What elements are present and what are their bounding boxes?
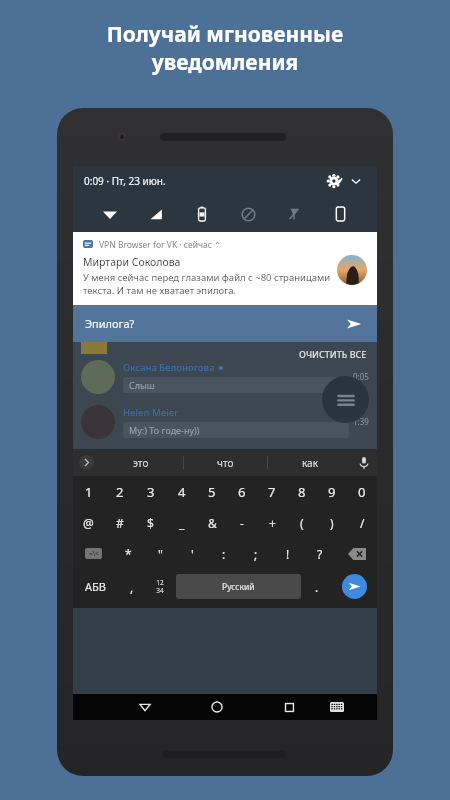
staticText: Му:) То годе-ну)) bbox=[129, 424, 200, 436]
button[interactable]: , bbox=[118, 569, 146, 604]
staticText: Эпилога? bbox=[85, 316, 135, 331]
staticText: 5 bbox=[208, 483, 216, 501]
staticText: VPN Browser for VK · сейчас ⌃ bbox=[99, 239, 222, 251]
staticText: ) bbox=[330, 515, 334, 531]
staticText: , bbox=[130, 579, 134, 595]
button[interactable]: " bbox=[144, 538, 176, 569]
staticText: 4 bbox=[178, 483, 186, 501]
button[interactable]: / bbox=[347, 507, 377, 538]
staticText: ' bbox=[191, 546, 194, 562]
staticText: 9 bbox=[328, 483, 336, 501]
button[interactable]: ) bbox=[317, 507, 347, 538]
button[interactable]: # bbox=[104, 507, 135, 538]
staticText: Слыш bbox=[129, 379, 155, 391]
staticText: 1 bbox=[85, 483, 93, 501]
button[interactable]: Quick setting bbox=[95, 199, 125, 229]
staticText: ; bbox=[254, 546, 258, 562]
button[interactable]: как bbox=[268, 449, 351, 476]
staticText: : bbox=[222, 546, 226, 562]
button[interactable]: _ bbox=[166, 507, 197, 538]
staticText: =\< bbox=[89, 549, 99, 558]
staticText: " bbox=[158, 546, 163, 562]
button[interactable]: Quick setting bbox=[187, 199, 217, 229]
staticText: 8 bbox=[298, 483, 306, 501]
button[interactable]: Helen Meier bbox=[73, 399, 377, 444]
button[interactable]: Quick setting bbox=[141, 199, 171, 229]
button[interactable]: . bbox=[303, 569, 331, 604]
button[interactable]: это bbox=[99, 449, 183, 476]
button[interactable]: Quick setting bbox=[325, 199, 355, 229]
staticText: 3 bbox=[147, 483, 155, 501]
button[interactable]: Symbols bbox=[73, 538, 113, 569]
staticText: 0:05 bbox=[353, 371, 369, 382]
button[interactable]: ! bbox=[272, 538, 304, 569]
button[interactable]: Русский bbox=[176, 574, 301, 599]
button[interactable]: Quick setting bbox=[233, 199, 263, 229]
button[interactable]: Settings bbox=[324, 170, 346, 192]
staticText: Миртари Соколова bbox=[83, 255, 181, 269]
button[interactable]: 7 bbox=[257, 476, 287, 507]
button[interactable]: Menu bbox=[322, 376, 369, 423]
button[interactable]: Back bbox=[125, 694, 165, 720]
button[interactable]: Home bbox=[197, 694, 237, 720]
staticText: _ bbox=[179, 515, 185, 531]
button[interactable]: 8 bbox=[287, 476, 317, 507]
staticText: + bbox=[269, 515, 276, 531]
button[interactable]: 0 bbox=[347, 476, 377, 507]
button[interactable]: Оксана Белоногова bbox=[73, 354, 377, 399]
button[interactable]: Recents bbox=[269, 694, 309, 720]
button[interactable]: 4 bbox=[166, 476, 197, 507]
staticText: . bbox=[315, 579, 319, 595]
staticText: что bbox=[217, 456, 234, 470]
staticText: 0 bbox=[358, 483, 366, 501]
button[interactable]: * bbox=[113, 538, 144, 569]
button[interactable]: Backspace bbox=[336, 538, 377, 569]
staticText: / bbox=[360, 515, 365, 531]
button[interactable]: 3 bbox=[135, 476, 166, 507]
button[interactable]: Expand bbox=[346, 171, 366, 191]
staticText: это bbox=[133, 456, 149, 470]
button[interactable]: 5 bbox=[197, 476, 227, 507]
button[interactable]: Send reply bbox=[343, 313, 365, 335]
button[interactable]: что bbox=[184, 449, 267, 476]
staticText: Получай мгновенные уведомления bbox=[0, 20, 450, 76]
button[interactable]: Эпилога? bbox=[73, 305, 377, 342]
staticText: ОЧИСТИТЬ ВСЕ bbox=[299, 348, 367, 360]
button[interactable]: Quick setting bbox=[279, 199, 309, 229]
staticText: $ bbox=[147, 515, 154, 531]
button[interactable]: 2 bbox=[104, 476, 135, 507]
button[interactable]: ? bbox=[304, 538, 336, 569]
staticText: @ bbox=[83, 515, 94, 531]
staticText: ? bbox=[317, 546, 323, 562]
button[interactable]: Switch keyboard bbox=[317, 694, 357, 720]
staticText: ! bbox=[286, 546, 290, 562]
staticText: & bbox=[208, 515, 217, 531]
staticText: 2 bbox=[116, 483, 124, 501]
staticText: # bbox=[116, 515, 124, 531]
button[interactable]: - bbox=[227, 507, 257, 538]
button[interactable]: ; bbox=[240, 538, 272, 569]
button[interactable]: 1 bbox=[73, 476, 104, 507]
staticText: * bbox=[125, 546, 132, 562]
button[interactable]: Voice input bbox=[351, 449, 377, 476]
button[interactable]: $ bbox=[135, 507, 166, 538]
button[interactable]: Send bbox=[331, 569, 377, 604]
button[interactable]: More suggestions bbox=[73, 449, 99, 476]
staticText: 7 bbox=[268, 483, 276, 501]
staticText: как bbox=[302, 456, 318, 470]
button[interactable]: @ bbox=[73, 507, 104, 538]
button[interactable]: 9 bbox=[317, 476, 347, 507]
button[interactable]: VPN Browser for VK · сейчас ⌃ bbox=[73, 232, 377, 342]
button[interactable]: & bbox=[197, 507, 227, 538]
button[interactable]: ( bbox=[287, 507, 317, 538]
button[interactable]: 6 bbox=[227, 476, 257, 507]
button[interactable]: АБВ bbox=[73, 569, 118, 604]
button[interactable]: : bbox=[208, 538, 240, 569]
button[interactable]: + bbox=[257, 507, 287, 538]
staticText: - bbox=[240, 515, 244, 531]
button[interactable]: ' bbox=[176, 538, 208, 569]
button[interactable]: Numbers bbox=[146, 569, 174, 604]
staticText: Оксана Белоногова bbox=[123, 361, 215, 374]
staticText: У меня сейчас перед глазами файл с ~80 с… bbox=[83, 271, 331, 297]
staticText: 1:39 bbox=[353, 416, 369, 427]
